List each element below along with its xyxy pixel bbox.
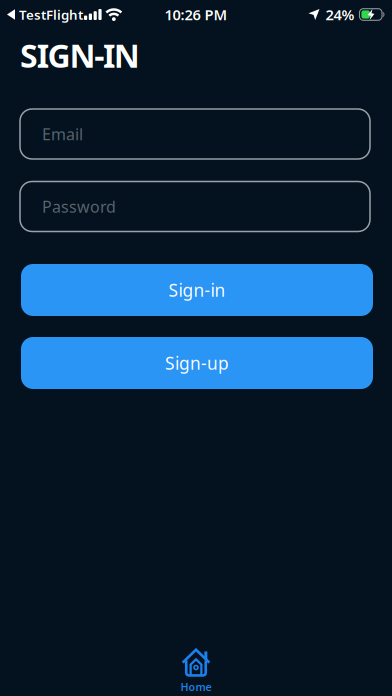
- staticText: Home: [180, 680, 211, 694]
- button[interactable]: Home: [0, 648, 392, 696]
- button[interactable]: Password: [0, 181, 392, 231]
- button[interactable]: Sign-in: [0, 264, 392, 316]
- staticText: 24%: [325, 5, 354, 24]
- staticText: Sign-in: [168, 278, 225, 301]
- button[interactable]: Sign-up: [0, 337, 392, 389]
- staticText: TestFlight: [19, 6, 83, 23]
- staticText: Email: [42, 123, 83, 145]
- button[interactable]: Email: [0, 109, 392, 159]
- staticText: Sign-up: [165, 351, 229, 374]
- staticText: 10:26 PM: [164, 5, 227, 24]
- staticText: SIGN-IN: [20, 34, 140, 76]
- staticText: Password: [42, 196, 116, 217]
